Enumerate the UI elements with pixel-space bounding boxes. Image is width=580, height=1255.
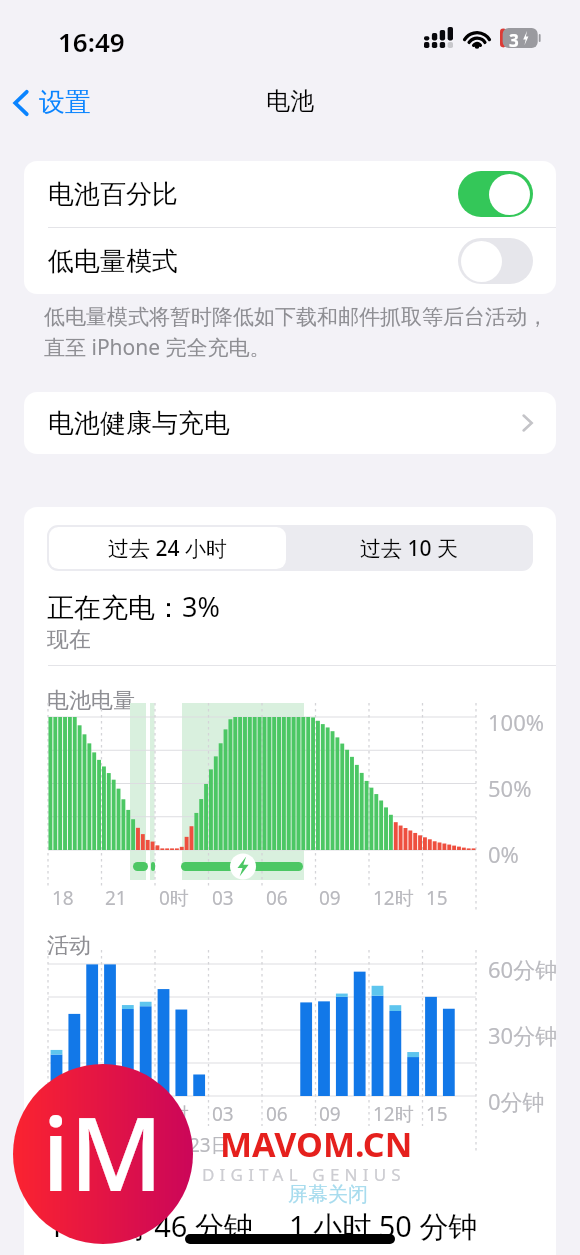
staticText: 电池 [266, 86, 314, 116]
staticText: 11 小时 46 分钟 [48, 1206, 253, 1246]
staticText: 3 [509, 29, 519, 49]
other: Back [12, 89, 30, 117]
button[interactable]: On [458, 171, 533, 217]
staticText: DIGITAL GENIUS [202, 1163, 406, 1186]
button[interactable]: 电池百分比 [24, 161, 556, 227]
staticText: 03 [212, 885, 234, 911]
button[interactable]: 低电量模式 [24, 228, 556, 294]
staticText: 低电量模式 [48, 245, 178, 278]
staticText: 18 [52, 885, 74, 911]
staticText: 0% [488, 839, 519, 869]
staticText: 60分钟 [488, 954, 556, 984]
staticText: 03 [212, 1101, 234, 1127]
staticText: 过去 10 天 [360, 534, 458, 563]
staticText: 低电量模式将暂时降低如下载和邮件抓取等后台活动， [44, 304, 548, 330]
staticText: iM [42, 1082, 164, 1221]
staticText: 09 [319, 885, 341, 911]
staticText: 电池百分比 [48, 178, 178, 211]
staticText: 设置 [39, 86, 91, 119]
staticText: 100% [488, 707, 545, 737]
staticText: 屏幕关闭 [288, 1182, 368, 1207]
staticText: 0时 [159, 1101, 189, 1127]
staticText: 15 [426, 885, 448, 911]
button[interactable]: Back [6, 82, 97, 123]
staticText: 15 [426, 1101, 448, 1127]
staticText: 12时 [373, 1101, 414, 1127]
button[interactable]: Off [458, 238, 533, 284]
staticText: 30分钟 [488, 1020, 556, 1050]
staticText: 正在充电：3% [47, 588, 220, 625]
button[interactable]: 过去 24 小时 [49, 527, 286, 569]
staticText: 0分钟 [488, 1086, 545, 1116]
staticText: 06 [266, 885, 288, 911]
staticText: 06 [266, 1101, 288, 1127]
button[interactable]: 电池健康与充电 [24, 392, 556, 454]
staticText: 50% [488, 773, 532, 803]
staticText: 09 [319, 1101, 341, 1127]
staticText: 23日 [189, 1132, 230, 1158]
staticText: MAVOM.CN [220, 1121, 413, 1167]
staticText: 21 [105, 885, 127, 911]
staticText: 电池健康与充电 [48, 407, 230, 440]
staticText: 直至 iPhone 完全充电。 [44, 333, 271, 362]
staticText: 电池电量 [47, 687, 135, 715]
button[interactable]: 过去 10 天 [286, 527, 531, 569]
staticText: 12时 [373, 885, 414, 911]
staticText: 活动 [47, 932, 91, 960]
staticText: 0时 [159, 885, 189, 911]
staticText: 1 小时 50 分钟 [289, 1206, 478, 1246]
staticText: 现在 [47, 626, 91, 654]
staticText: 过去 24 小时 [108, 534, 227, 563]
staticText: 16:49 [58, 24, 125, 59]
staticText: 18 [52, 1101, 74, 1127]
